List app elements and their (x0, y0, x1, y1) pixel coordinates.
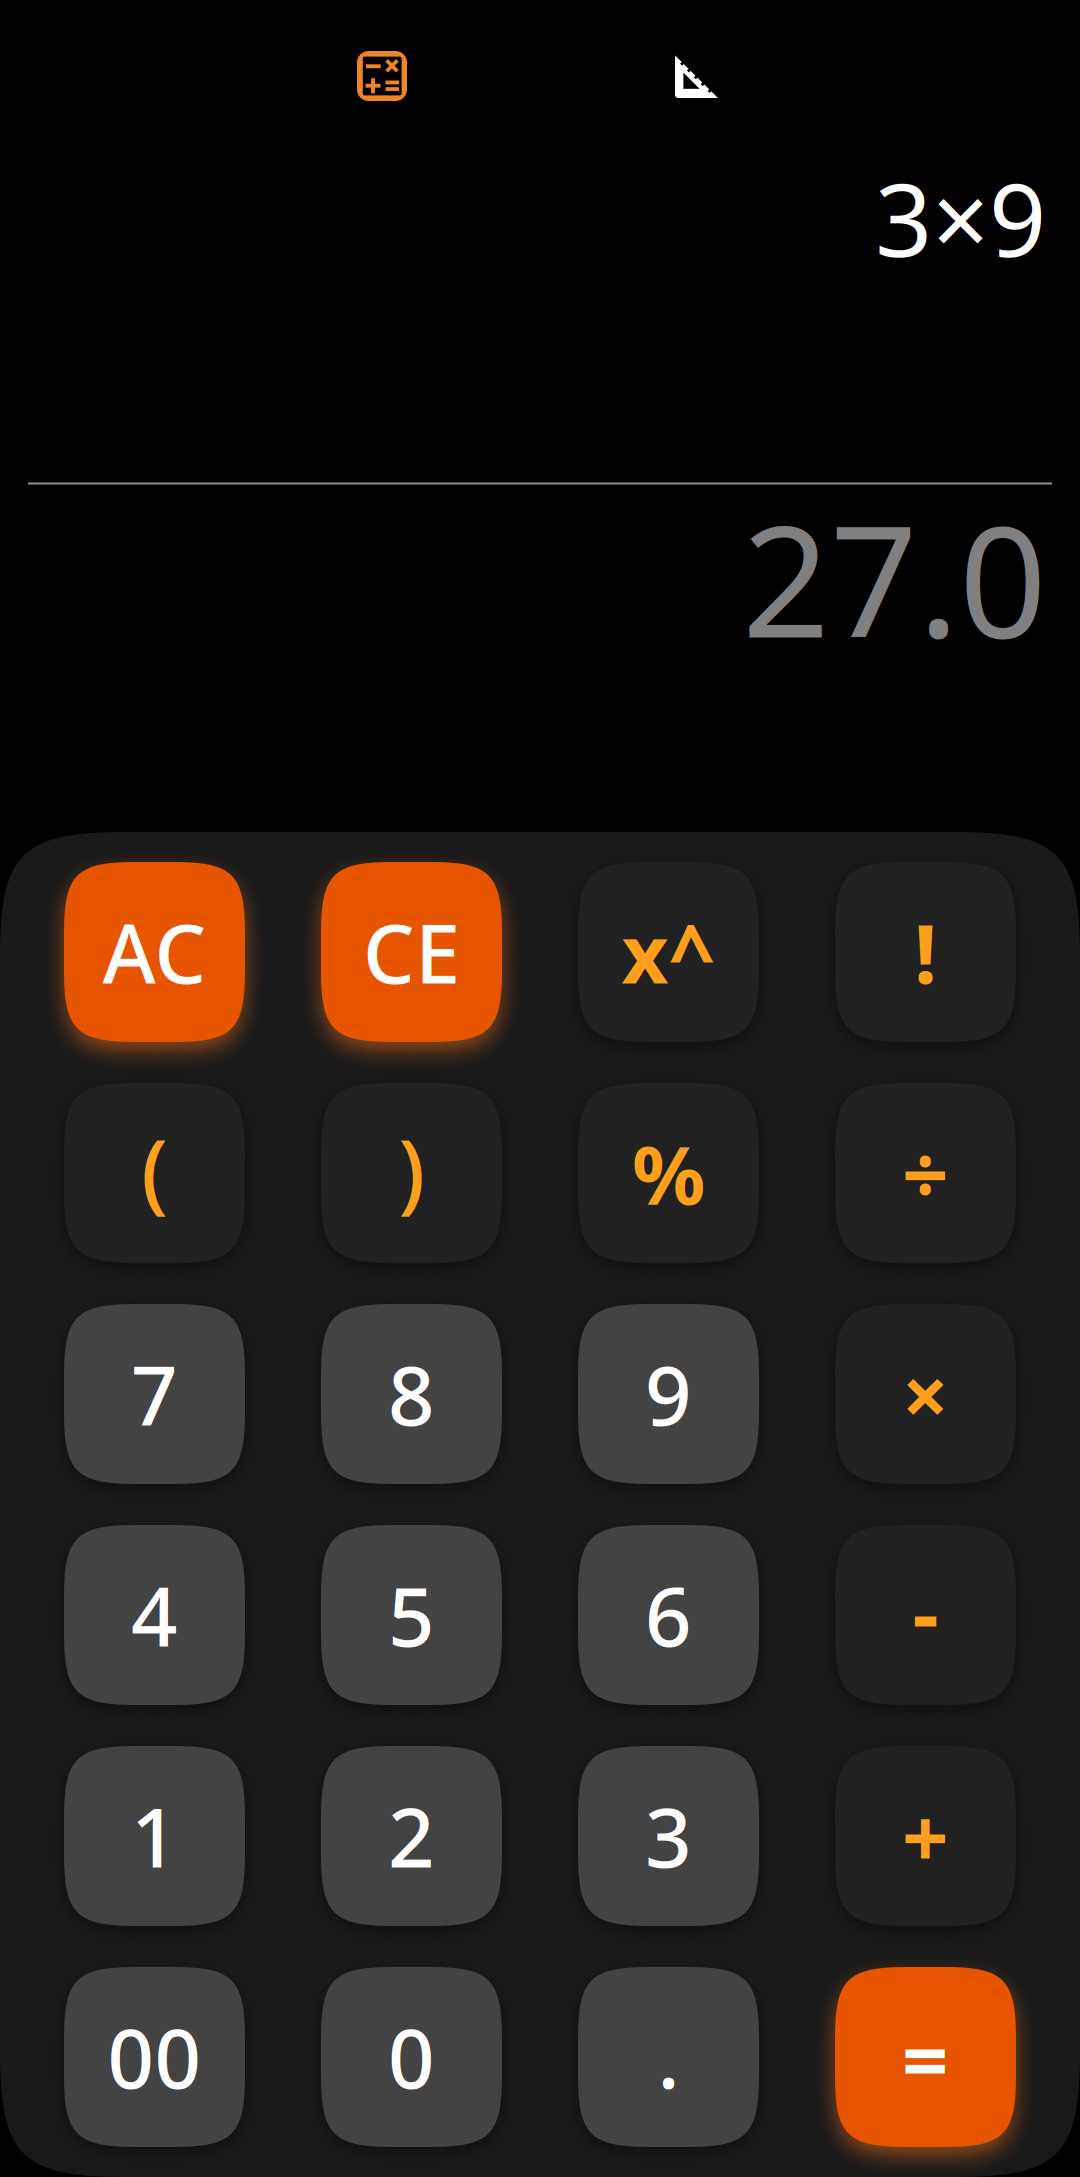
button[interactable]: 5 (321, 1525, 502, 1705)
button[interactable]: - (835, 1525, 1016, 1705)
button[interactable]: CE (321, 862, 502, 1042)
button[interactable]: 8 (321, 1304, 502, 1484)
staticText: + (902, 1782, 949, 1890)
staticText: = (902, 2005, 949, 2113)
button[interactable]: Calculator (357, 51, 407, 101)
staticText: 5 (388, 1561, 435, 1669)
button[interactable]: 6 (578, 1525, 759, 1705)
button[interactable]: . (578, 1967, 759, 2147)
staticText: - (912, 1558, 938, 1666)
staticText: ÷ (902, 1119, 949, 1227)
button[interactable]: + (835, 1746, 1016, 1926)
button[interactable]: = (835, 1967, 1016, 2147)
button[interactable]: % (578, 1083, 759, 1263)
staticText: 3×9 (875, 152, 1046, 284)
staticText: 6 (645, 1561, 692, 1669)
button[interactable]: 0 (321, 1967, 502, 2147)
staticText: ) (398, 1111, 425, 1227)
button[interactable]: 2 (321, 1746, 502, 1926)
button[interactable]: 9 (578, 1304, 759, 1484)
button[interactable]: ! (835, 862, 1016, 1042)
staticText: 9 (645, 1340, 692, 1448)
button[interactable]: 3 (578, 1746, 759, 1926)
staticText: x^ (621, 898, 715, 1006)
staticText: 27.0 (742, 476, 1047, 680)
staticText: ! (914, 898, 937, 1006)
button[interactable]: ( (64, 1083, 245, 1263)
staticText: 2 (388, 1782, 435, 1890)
button[interactable]: × (835, 1304, 1016, 1484)
button[interactable]: AC (64, 862, 245, 1042)
staticText: AC (102, 898, 206, 1006)
staticText: 8 (388, 1340, 435, 1448)
button[interactable]: 1 (64, 1746, 245, 1926)
staticText: ( (141, 1111, 168, 1227)
staticText: 00 (107, 2003, 201, 2111)
staticText: . (657, 2003, 679, 2111)
staticText: 0 (388, 2003, 435, 2111)
button[interactable]: x^ (578, 862, 759, 1042)
button[interactable]: ÷ (835, 1083, 1016, 1263)
staticText: 7 (131, 1340, 178, 1448)
button[interactable]: ) (321, 1083, 502, 1263)
staticText: 4 (131, 1561, 178, 1669)
staticText: % (632, 1119, 705, 1227)
button[interactable]: 00 (64, 1967, 245, 2147)
staticText: × (902, 1340, 949, 1448)
button[interactable]: 4 (64, 1525, 245, 1705)
staticText: 1 (131, 1782, 178, 1890)
staticText: CE (363, 898, 460, 1006)
staticText: 3 (645, 1782, 692, 1890)
button[interactable]: Unit converter (675, 54, 719, 98)
button[interactable]: 7 (64, 1304, 245, 1484)
